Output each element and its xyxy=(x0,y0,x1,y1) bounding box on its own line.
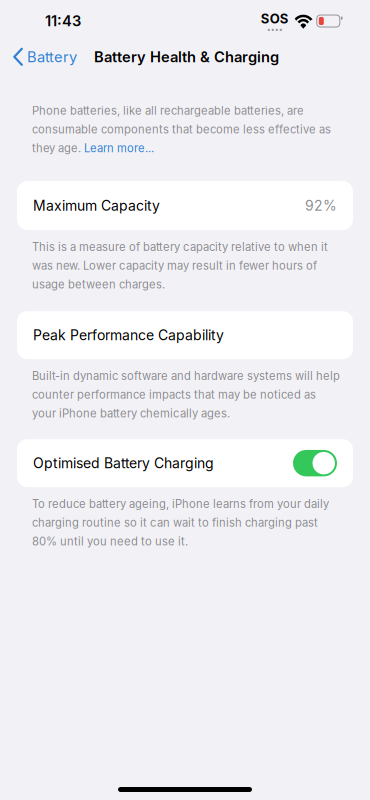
staticText: Maximum Capacity xyxy=(33,197,160,214)
staticText: Learn more... xyxy=(84,141,154,155)
staticText: they age. xyxy=(32,141,84,155)
staticText: Built-in dynamic software and hardware s… xyxy=(32,369,340,420)
staticText: Battery Health & Charging xyxy=(94,48,279,66)
button[interactable]: Battery xyxy=(0,41,77,72)
button[interactable]: Learn more... xyxy=(84,141,154,155)
staticText: 11:43 xyxy=(45,12,81,30)
button[interactable]: Optimised Battery Charging xyxy=(293,450,337,476)
staticText: 92% xyxy=(305,197,337,214)
staticText: Peak Performance Capability xyxy=(33,327,224,343)
staticText: Phone batteries, like all rechargeable b… xyxy=(32,104,331,136)
staticText: To reduce battery ageing, iPhone learns … xyxy=(32,497,329,548)
staticText: Optimised Battery Charging xyxy=(33,455,214,472)
staticText: Battery xyxy=(27,48,77,66)
staticText: SOS xyxy=(261,11,289,27)
button[interactable]: Peak Performance Capability xyxy=(0,291,370,359)
staticText: This is a measure of battery capacity re… xyxy=(32,240,328,291)
